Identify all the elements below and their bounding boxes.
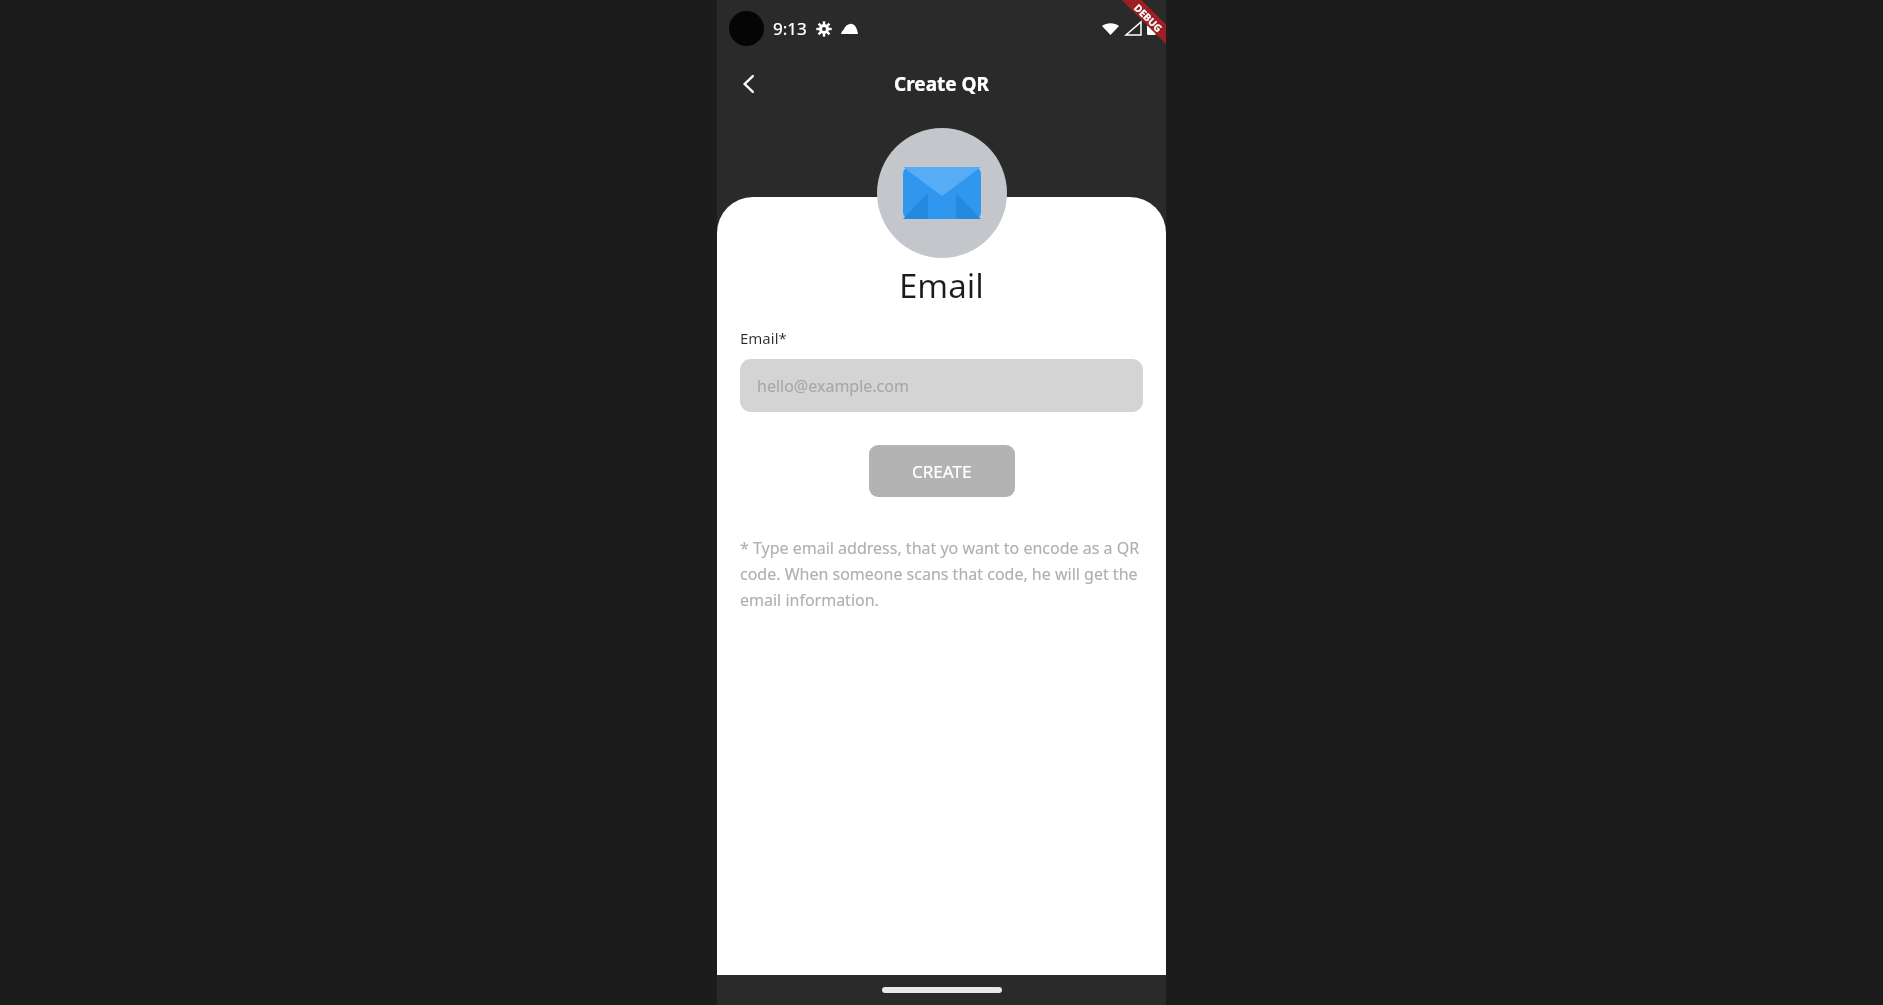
staticText: * Type email address, that yo want to en… <box>740 537 1143 611</box>
staticText: Email <box>899 263 984 308</box>
staticText: Create QR <box>894 71 990 97</box>
staticText: hello@example.com <box>757 375 909 397</box>
staticText: DEBUG <box>1131 1 1166 35</box>
button[interactable]: hello@example.com <box>740 359 1143 412</box>
staticText: 9:13 <box>773 17 807 40</box>
button[interactable]: Back <box>727 62 771 106</box>
button[interactable]: CREATE <box>869 445 1015 497</box>
staticText: CREATE <box>912 460 972 483</box>
staticText: Email* <box>740 328 787 348</box>
